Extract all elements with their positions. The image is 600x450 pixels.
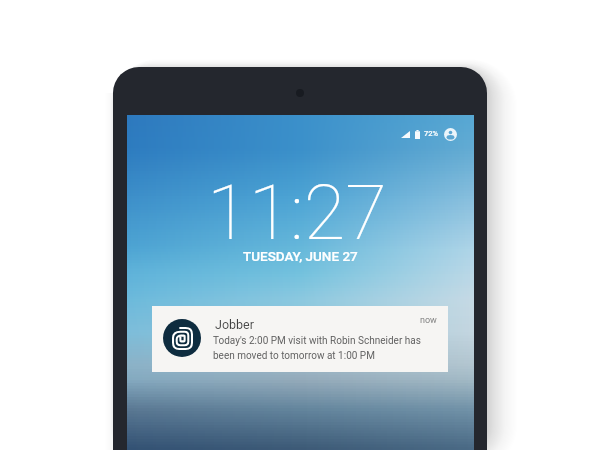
staticText: 11:27 (207, 168, 387, 257)
button[interactable]: Jobber (152, 306, 448, 372)
staticText: Today's 2:00 PM visit with Robin Schneid… (213, 335, 421, 362)
staticText: Jobber (215, 317, 254, 332)
staticText: 72% (424, 129, 439, 138)
staticText: now (420, 315, 437, 326)
staticText: TUESDAY, JUNE 27 (243, 248, 358, 264)
button[interactable]: Account (444, 128, 457, 141)
